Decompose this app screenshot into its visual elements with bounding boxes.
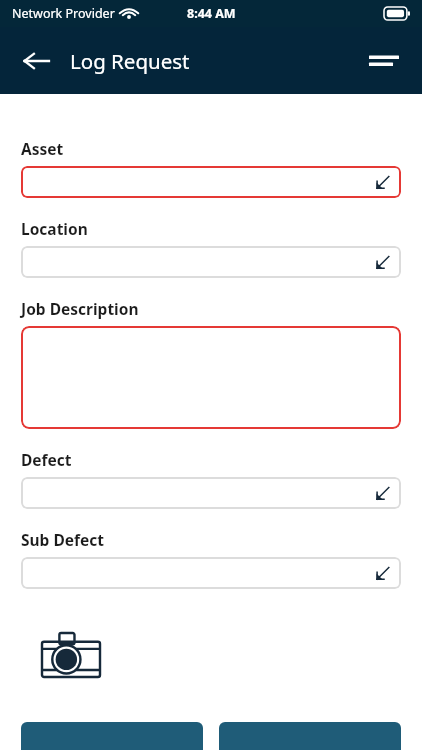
staticText: 8:44 AM	[187, 5, 236, 22]
button[interactable]	[219, 722, 401, 750]
button[interactable]: Take photo	[42, 631, 102, 679]
button[interactable]: Job Description input	[21, 326, 401, 429]
staticText: Asset	[21, 138, 64, 159]
staticText: Sub Defect	[21, 529, 105, 550]
button[interactable]	[21, 722, 203, 750]
button[interactable]: Asset selector	[21, 166, 401, 198]
button[interactable]: Back	[18, 43, 54, 79]
staticText: Location	[21, 218, 88, 239]
staticText: Defect	[21, 449, 72, 470]
staticText: Job Description	[21, 298, 139, 319]
button[interactable]: Menu	[364, 41, 404, 81]
button[interactable]: Sub Defect selector	[21, 557, 401, 589]
staticText: Network Provider	[12, 5, 115, 22]
staticText: Log Request	[70, 47, 190, 75]
button[interactable]: Location selector	[21, 246, 401, 278]
button[interactable]: Defect selector	[21, 477, 401, 509]
